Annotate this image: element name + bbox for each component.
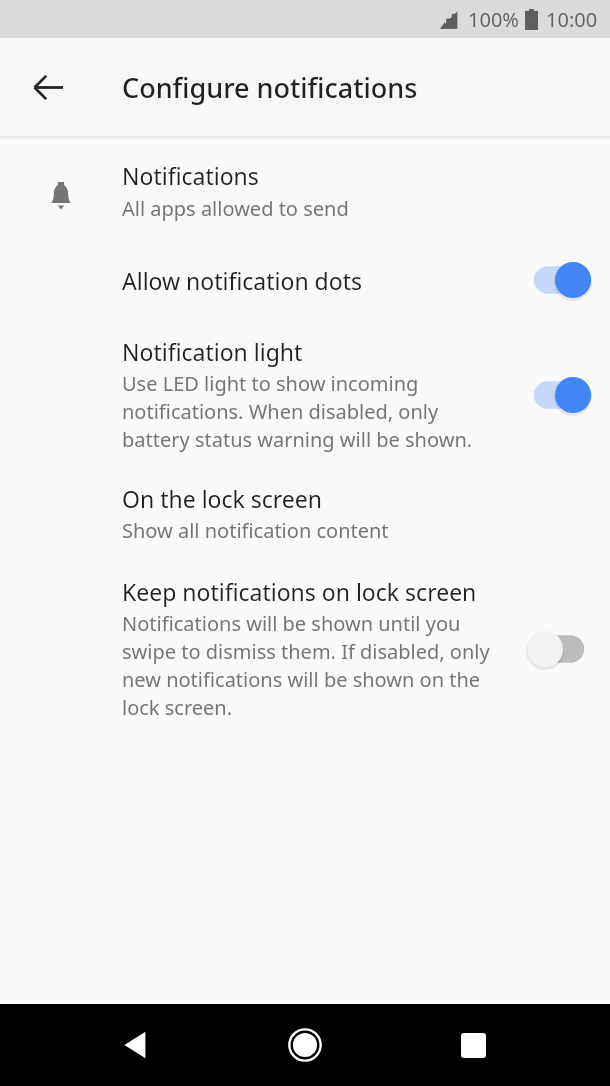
- staticText: Notifications will be shown until you sw…: [122, 610, 508, 721]
- button[interactable]: Keep notifications on lock screen: [0, 548, 610, 725]
- button[interactable]: Back: [24, 63, 72, 111]
- staticText: Use LED light to show incoming notificat…: [122, 370, 508, 453]
- staticText: 10:00: [546, 6, 598, 33]
- staticText: Notifications: [122, 160, 259, 191]
- staticText: 100%: [468, 6, 519, 33]
- button[interactable]: Toggle off: [528, 627, 602, 671]
- staticText: Allow notification dots: [122, 265, 362, 296]
- button[interactable]: Notifications: [0, 152, 610, 232]
- staticText: Configure notifications: [122, 69, 418, 106]
- staticText: On the lock screen: [122, 483, 323, 514]
- button[interactable]: Notification light: [0, 306, 610, 457]
- button[interactable]: On the lock screen: [0, 457, 610, 548]
- staticText: Notification light: [122, 336, 303, 367]
- button[interactable]: Toggle on: [528, 373, 602, 417]
- staticText: Show all notification content: [122, 517, 389, 544]
- button[interactable]: Recent apps: [449, 1021, 497, 1069]
- button[interactable]: Toggle on: [528, 258, 602, 302]
- button[interactable]: Allow notification dots: [0, 232, 610, 306]
- staticText: All apps allowed to send: [122, 195, 349, 222]
- button[interactable]: Home: [279, 1019, 331, 1071]
- button[interactable]: Back: [113, 1021, 161, 1069]
- staticText: Keep notifications on lock screen: [122, 576, 477, 607]
